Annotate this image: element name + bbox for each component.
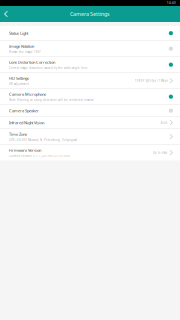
- staticText: (UTC+04:00) Moscow, St. Petersburg, Volg…: [9, 138, 77, 142]
- button[interactable]: HD Settings: [0, 73, 180, 89]
- button[interactable]: Time Zone: [0, 129, 180, 145]
- staticText: Image Rotation: [9, 44, 34, 49]
- staticText: Firmware Version: [9, 148, 41, 153]
- button[interactable]: Infrared Night Vision: [0, 117, 180, 129]
- button[interactable]: Back: [0, 7, 13, 21]
- staticText: Up to date: [153, 151, 168, 154]
- staticText: HD Settings: [9, 76, 29, 81]
- button[interactable]: Status Light: [0, 26, 180, 41]
- staticText: Note filtering so using detection will b…: [9, 98, 94, 102]
- staticText: Correct image distortion caused by the w…: [9, 66, 87, 70]
- staticText: Status Light: [9, 30, 28, 36]
- staticText: 1080P @25fps / 1Mbps: [135, 79, 168, 82]
- button[interactable]: Firmware Version: [0, 145, 180, 160]
- staticText: Infrared Night Vision: [9, 120, 44, 125]
- button[interactable]: Lens Distortion Correction: [0, 57, 180, 73]
- staticText: Time Zone: [9, 132, 27, 137]
- staticText: Lens Distortion Correction: [9, 60, 55, 65]
- button[interactable]: Image Rotation: [0, 41, 180, 57]
- button[interactable]: Camera Speaker: [0, 105, 180, 117]
- staticText: Rotate the image 180°: [9, 50, 41, 54]
- staticText: Camera Speaker: [9, 108, 39, 113]
- staticText: 14:43: [167, 1, 176, 5]
- staticText: Camera Microphone: [9, 92, 46, 97]
- staticText: Auto: [161, 121, 168, 124]
- staticText: Camera Settings: [70, 10, 110, 18]
- staticText: Current Version 3.1.1_20190727191909: [9, 154, 70, 158]
- button[interactable]: Camera Microphone: [0, 89, 180, 105]
- staticText: HD adjustment: [9, 82, 29, 86]
